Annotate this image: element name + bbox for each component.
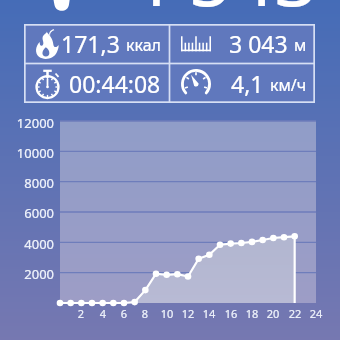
staticText: ккал (126, 34, 161, 56)
staticText: 2000 (0, 265, 54, 283)
staticText: 4 543 (126, 0, 318, 28)
staticText: 6 (112, 306, 136, 321)
staticText: 8 (133, 306, 157, 321)
staticText: 12 (176, 306, 200, 321)
button[interactable]: Speed (170, 64, 315, 103)
staticText: 4 (91, 306, 115, 321)
staticText: 12000 (0, 114, 54, 132)
staticText: 10 (155, 306, 179, 321)
staticText: 16 (219, 306, 243, 321)
staticText: 171,3 (61, 28, 120, 59)
staticText: 22 (283, 306, 307, 321)
staticText: 10000 (0, 144, 54, 162)
staticText: 14 (197, 306, 221, 321)
button[interactable]: Distance (170, 24, 315, 63)
staticText: 8000 (0, 174, 54, 192)
staticText: 24 (304, 306, 328, 321)
staticText: 4000 (0, 235, 54, 253)
staticText: 4,1 (231, 68, 264, 99)
staticText: 3 043 (229, 28, 288, 59)
staticText: 18 (240, 306, 264, 321)
staticText: 2 (69, 306, 93, 321)
button[interactable]: Duration (24, 64, 169, 103)
staticText: 6000 (0, 204, 54, 222)
staticText: км/ч (270, 74, 307, 96)
staticText: 00:44:08 (69, 68, 161, 99)
staticText: м (294, 34, 307, 56)
button[interactable]: Calories (24, 24, 169, 63)
staticText: 20 (261, 306, 285, 321)
